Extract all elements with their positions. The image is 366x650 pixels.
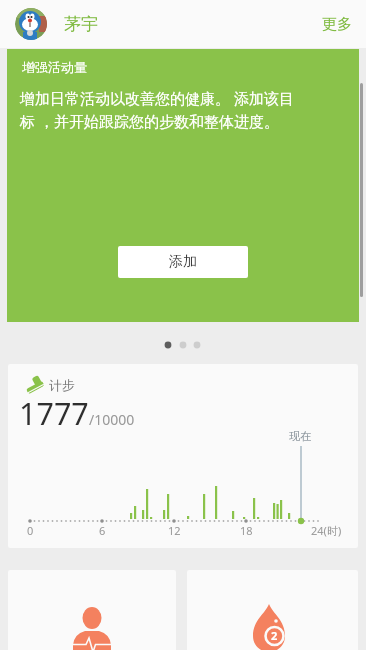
staticText: 增强活动量 [22, 59, 87, 75]
button[interactable]: 更多 [322, 15, 366, 34]
staticText: 0 [27, 523, 34, 538]
staticText: /10000 [89, 410, 135, 429]
staticText: 1777 [19, 392, 89, 434]
staticText: 12 [168, 523, 181, 538]
staticText: 计步 [49, 377, 75, 393]
button[interactable]: 添加 [118, 246, 248, 278]
staticText: 增加日常活动以改善您的健康。 添加该目 标 ，并开始跟踪您的步数和整体进度。 [20, 88, 294, 132]
staticText: 茅宇 [64, 14, 98, 35]
staticText: 2 [271, 628, 278, 643]
button[interactable] [8, 570, 176, 650]
staticText: 现在 [289, 429, 311, 443]
staticText: 更多 [322, 15, 352, 34]
staticText: 18 [240, 523, 253, 538]
staticText: 6 [99, 523, 106, 538]
button[interactable]: 茅宇 [15, 8, 98, 40]
staticText: 24(时) [311, 523, 342, 538]
button[interactable]: 2 [187, 570, 358, 650]
staticText: 添加 [169, 253, 197, 271]
button[interactable]: 计步 [8, 364, 358, 548]
